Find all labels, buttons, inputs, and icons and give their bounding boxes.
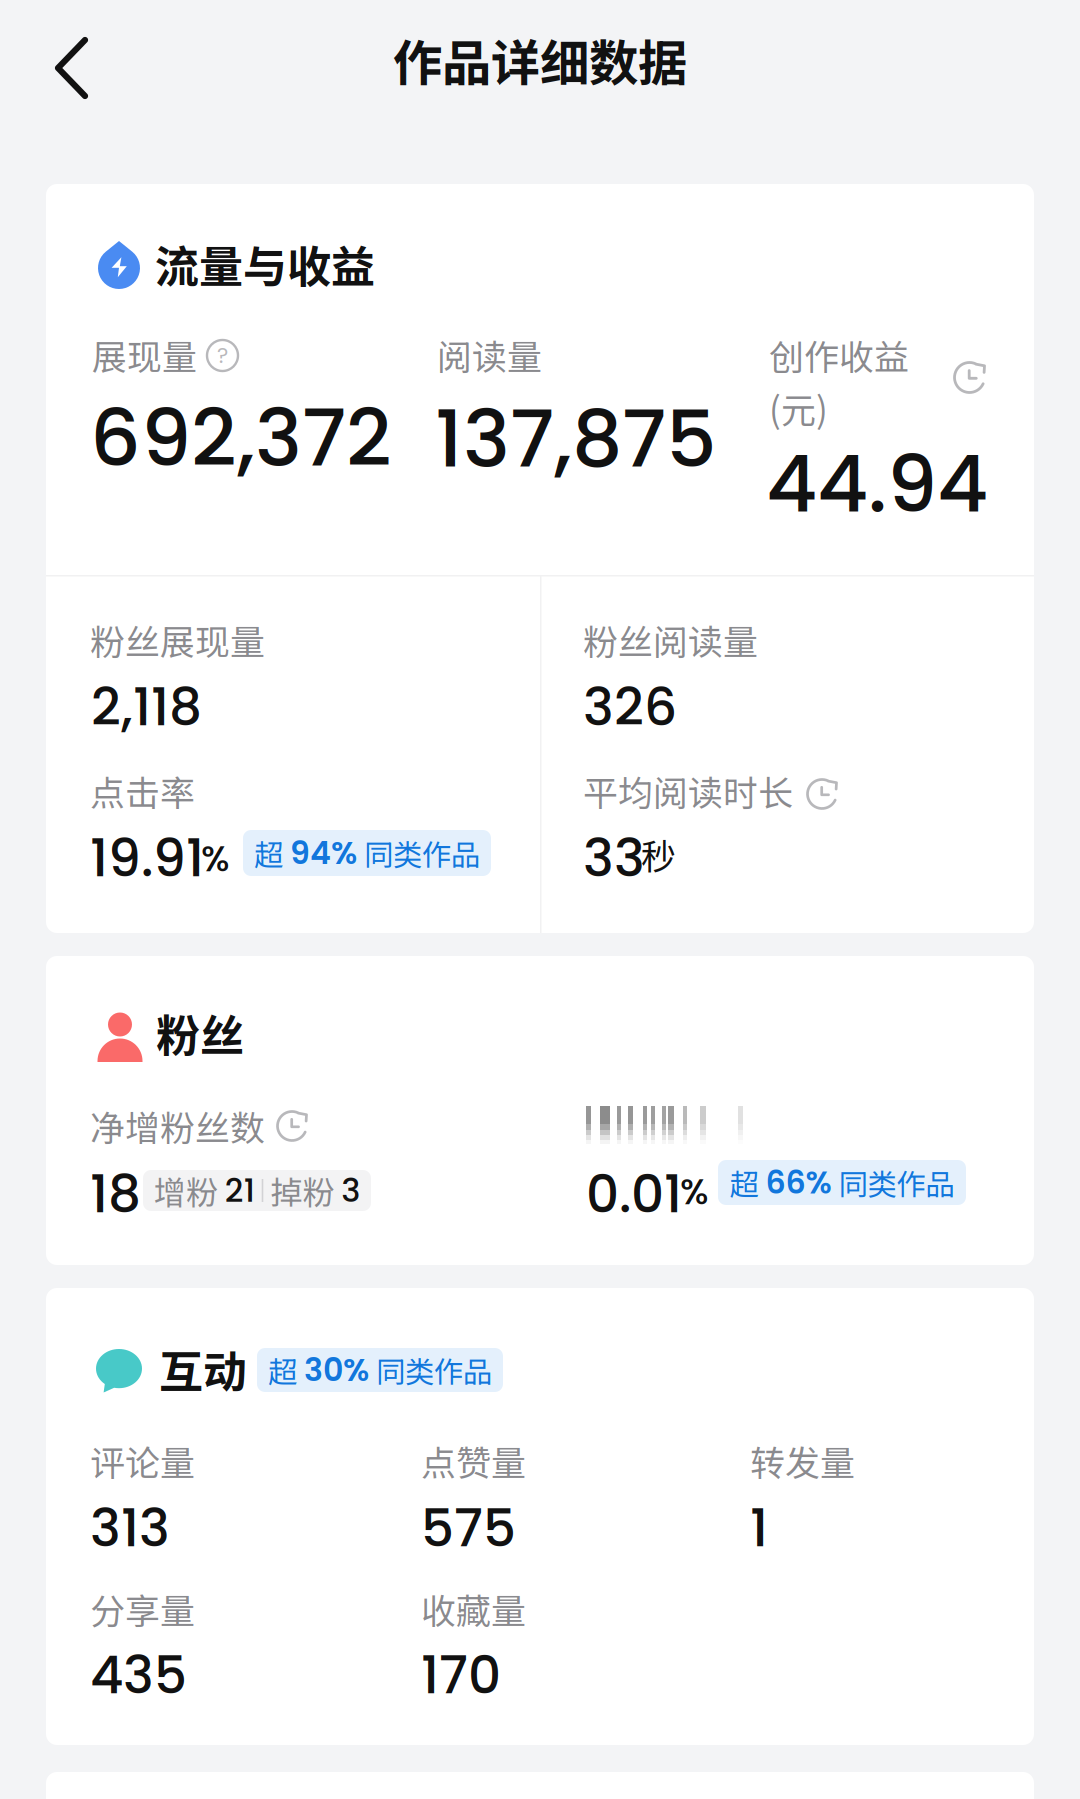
staticText: 阅读量 [437, 329, 542, 380]
staticText: ? [217, 340, 228, 371]
staticText: 超 [268, 1349, 304, 1391]
staticText: 收藏量 [421, 1583, 526, 1634]
staticText: 粉丝 [156, 1001, 244, 1065]
staticText: 313 [90, 1492, 170, 1564]
staticText: 3 [341, 1168, 360, 1213]
staticText: 增粉 [154, 1167, 225, 1214]
button[interactable]: 展现量说明 [207, 340, 238, 371]
staticText: 1 [750, 1492, 768, 1564]
staticText: 33 [583, 822, 645, 894]
button[interactable]: 数据更新说明 [806, 778, 838, 810]
staticText: 创作收益 [769, 329, 909, 380]
staticText: 平均阅读时长 [583, 765, 793, 816]
staticText: 0.01 [586, 1158, 682, 1230]
staticText: (元) [769, 382, 828, 433]
staticText: % [201, 833, 230, 884]
staticText: 点击率 [90, 765, 195, 816]
staticText: 同类作品 [831, 1161, 954, 1204]
button[interactable]: 超 [257, 1348, 503, 1392]
staticText: 流量与收益 [155, 232, 375, 296]
button[interactable]: 数据更新说明 [953, 361, 986, 394]
button[interactable]: 返回 [33, 18, 110, 118]
staticText: 展现量 [92, 329, 197, 380]
staticText [255, 1167, 262, 1214]
staticText: 超 [729, 1161, 765, 1204]
staticText: 分享量 [90, 1583, 195, 1634]
staticText: 18 [90, 1158, 141, 1230]
staticText: 137,875 [435, 383, 717, 494]
staticText: 评论量 [90, 1435, 195, 1486]
staticText: 692,372 [90, 382, 392, 493]
staticText: 净增粉丝数 [90, 1100, 265, 1151]
staticText: 326 [583, 671, 677, 743]
button[interactable]: 超 [718, 1160, 966, 1205]
staticText: 转发量 [750, 1435, 855, 1486]
staticText: 44.94 [766, 428, 988, 539]
staticText: 互动 [159, 1337, 247, 1401]
staticText: 435 [90, 1639, 187, 1711]
staticText: 30% [304, 1348, 369, 1392]
staticText: 66% [765, 1160, 831, 1205]
staticText: 19.91 [90, 822, 204, 894]
staticText: 21 [225, 1168, 255, 1213]
staticText: 同类作品 [357, 832, 480, 874]
staticText: % [680, 1166, 709, 1217]
staticText: 575 [421, 1492, 516, 1564]
staticText: 作品详细数据 [393, 24, 687, 95]
staticText: 94% [290, 831, 357, 875]
staticText [263, 1167, 270, 1214]
staticText: 2,118 [91, 671, 202, 743]
button[interactable]: 数据更新说明 [276, 1110, 308, 1142]
staticText: 粉丝阅读量 [583, 614, 758, 665]
staticText: 同类作品 [369, 1349, 492, 1391]
staticText: 粉丝展现量 [90, 614, 265, 665]
staticText: 点赞量 [421, 1435, 526, 1486]
staticText: 超 [254, 832, 290, 874]
staticText: 170 [421, 1639, 501, 1711]
button[interactable]: 超 [243, 830, 491, 876]
staticText: 秒 [641, 829, 676, 880]
staticText: 掉粉 [270, 1167, 341, 1214]
